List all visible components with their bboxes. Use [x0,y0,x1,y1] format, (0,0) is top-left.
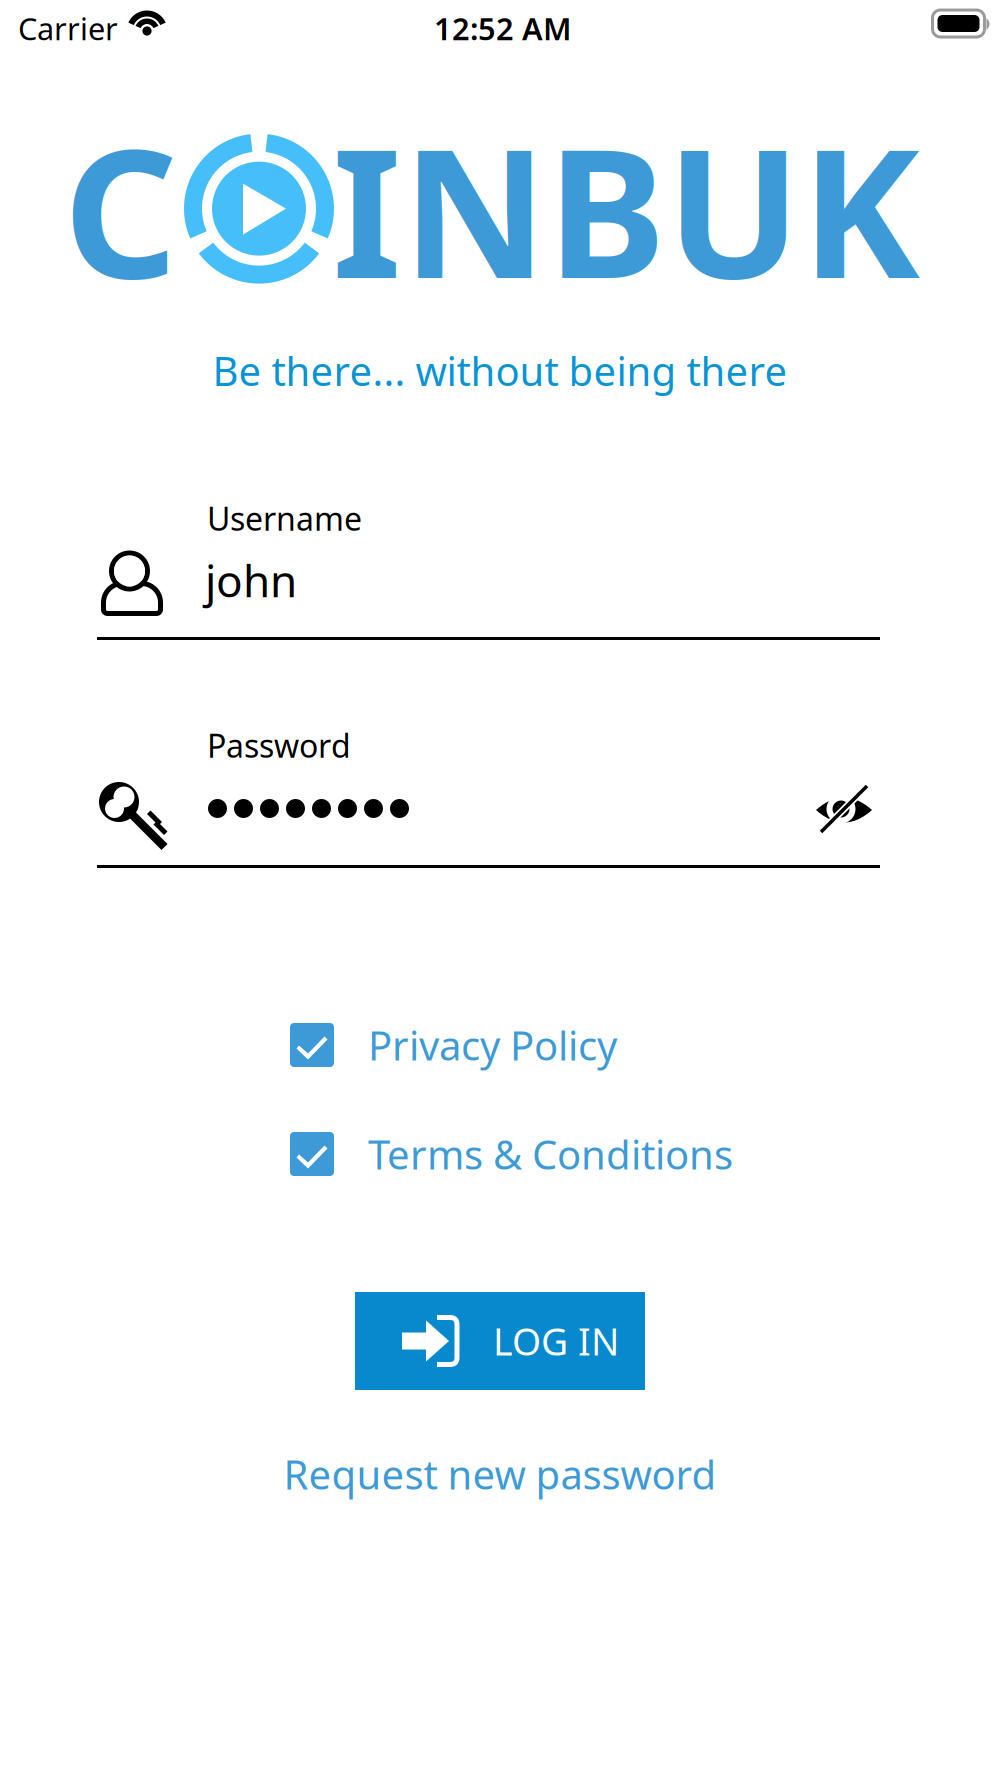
button[interactable]: Privacy Policy [290,1020,617,1070]
staticText: Username [207,497,362,539]
staticText: Request new password [283,1447,716,1500]
staticText: LOG IN [493,1316,619,1366]
button[interactable]: Show password [796,770,892,850]
staticText: C [63,90,178,327]
button[interactable]: Terms & Conditions [290,1129,733,1179]
button[interactable]: LOG IN [355,1292,645,1390]
staticText: 12:52 AM [434,8,571,49]
staticText: Be there... without being there [212,344,787,397]
staticText: Privacy Policy [368,1018,617,1071]
staticText: john [205,551,297,609]
staticText: INBUK [332,90,920,327]
button[interactable]: Request new password [280,1445,720,1503]
button[interactable]: Username [97,497,880,643]
staticText: Carrier [18,8,118,49]
staticText: Terms & Conditions [368,1127,733,1180]
button[interactable]: Password [97,724,880,868]
staticText: Password [207,724,351,766]
